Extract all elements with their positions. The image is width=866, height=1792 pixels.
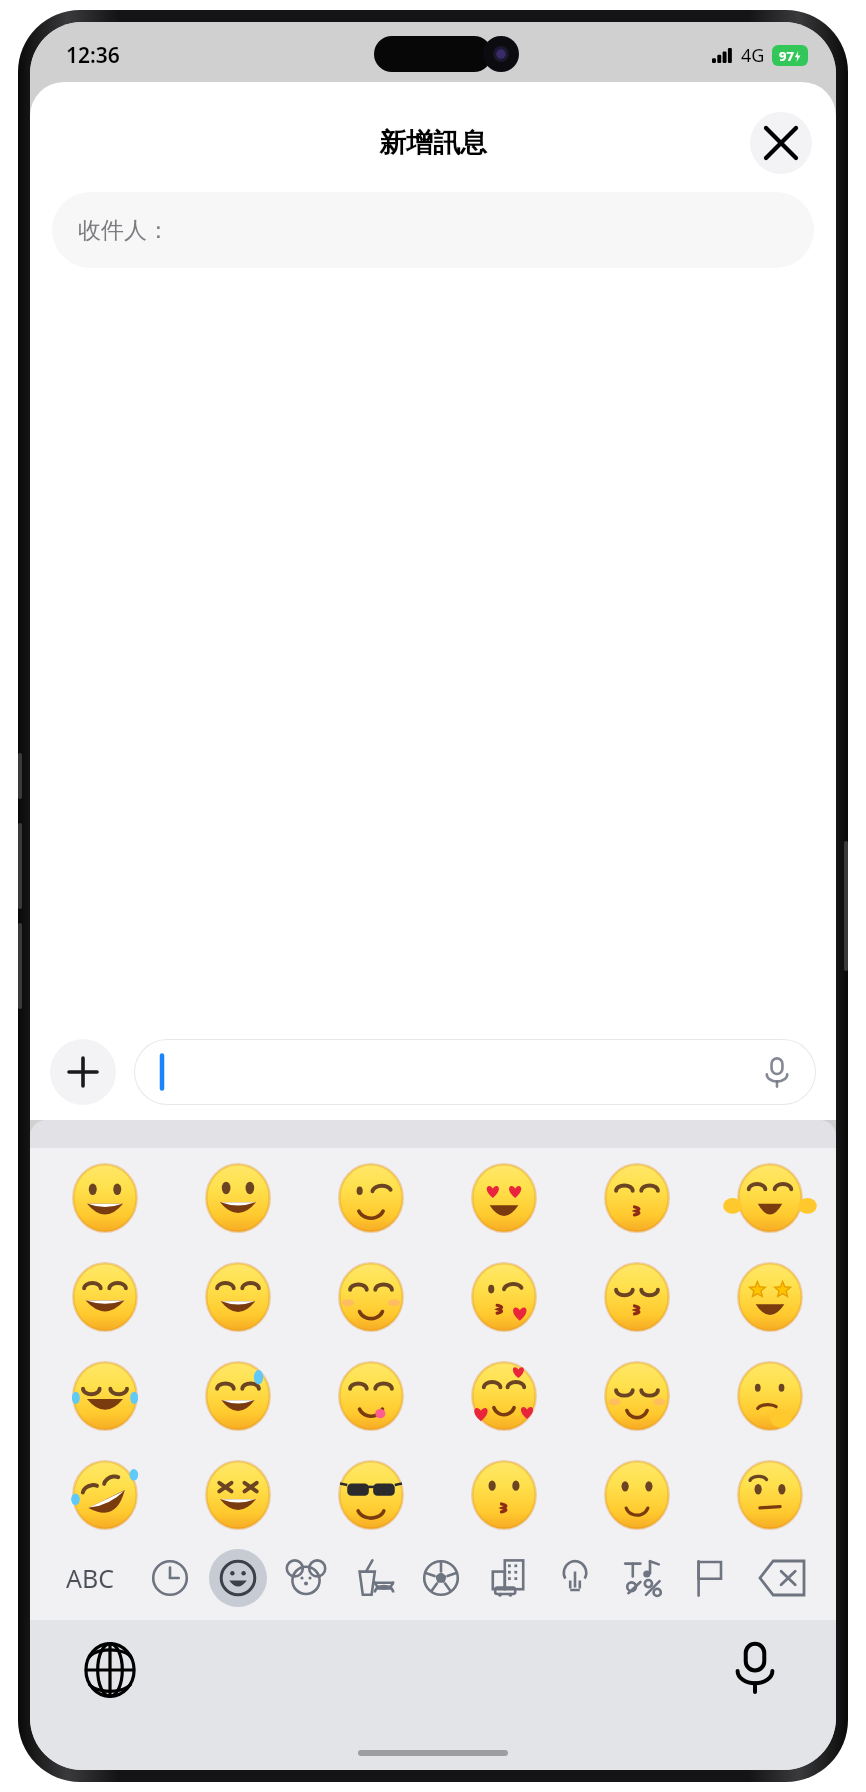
button[interactable]: Emoji	[171, 1148, 304, 1247]
staticText: ABC	[66, 1561, 115, 1595]
button[interactable]: food	[340, 1546, 407, 1610]
button[interactable]: Emoji	[38, 1346, 171, 1445]
button[interactable]: ball	[407, 1546, 474, 1610]
button[interactable]: Emoji	[437, 1148, 570, 1247]
button[interactable]: flag	[675, 1546, 742, 1610]
button[interactable]: Emoji	[570, 1346, 703, 1445]
button[interactable]: Emoji	[570, 1148, 703, 1247]
staticText: 12:36	[66, 41, 120, 70]
button[interactable]: sym	[608, 1546, 675, 1610]
button[interactable]: Emoji	[171, 1247, 304, 1346]
button[interactable]: Emoji	[304, 1247, 437, 1346]
button[interactable]: city	[474, 1546, 541, 1610]
button[interactable]: bulb	[541, 1546, 608, 1610]
staticText: 4G	[741, 43, 765, 68]
button[interactable]: Dictate	[134, 1039, 816, 1105]
button[interactable]: Dictation	[726, 1638, 784, 1696]
button[interactable]: Emoji	[304, 1445, 437, 1544]
button[interactable]: Emoji	[171, 1445, 304, 1544]
button[interactable]: ABC	[44, 1546, 136, 1610]
button[interactable]: smiley	[204, 1546, 272, 1610]
button[interactable]: Emoji	[703, 1247, 836, 1346]
staticText: 收件人：	[78, 216, 170, 245]
button[interactable]: Emoji	[38, 1148, 171, 1247]
staticText: 97	[779, 47, 794, 65]
button[interactable]: Emoji	[570, 1445, 703, 1544]
button[interactable]: Close	[750, 112, 812, 174]
button[interactable]: Emoji	[38, 1445, 171, 1544]
button[interactable]: Emoji	[171, 1346, 304, 1445]
button[interactable]: animal	[272, 1546, 340, 1610]
button[interactable]: Emoji	[304, 1148, 437, 1247]
button[interactable]: Emoji	[304, 1346, 437, 1445]
button[interactable]: Emoji	[437, 1445, 570, 1544]
button[interactable]: Emoji	[570, 1247, 703, 1346]
button[interactable]: Emoji	[703, 1445, 836, 1544]
button[interactable]: Emoji	[437, 1346, 570, 1445]
button[interactable]: Change keyboard language	[82, 1642, 138, 1698]
button[interactable]: Add attachment	[50, 1039, 116, 1105]
button[interactable]: Dictate	[760, 1055, 794, 1089]
staticText: 新增訊息	[379, 126, 487, 160]
button[interactable]: Emoji	[703, 1148, 836, 1247]
button[interactable]: 收件人：	[52, 192, 814, 268]
button[interactable]: Delete	[742, 1546, 822, 1610]
button[interactable]: Emoji	[437, 1247, 570, 1346]
button[interactable]: Emoji	[38, 1247, 171, 1346]
button[interactable]: clock	[136, 1546, 204, 1610]
button[interactable]: Emoji	[703, 1346, 836, 1445]
